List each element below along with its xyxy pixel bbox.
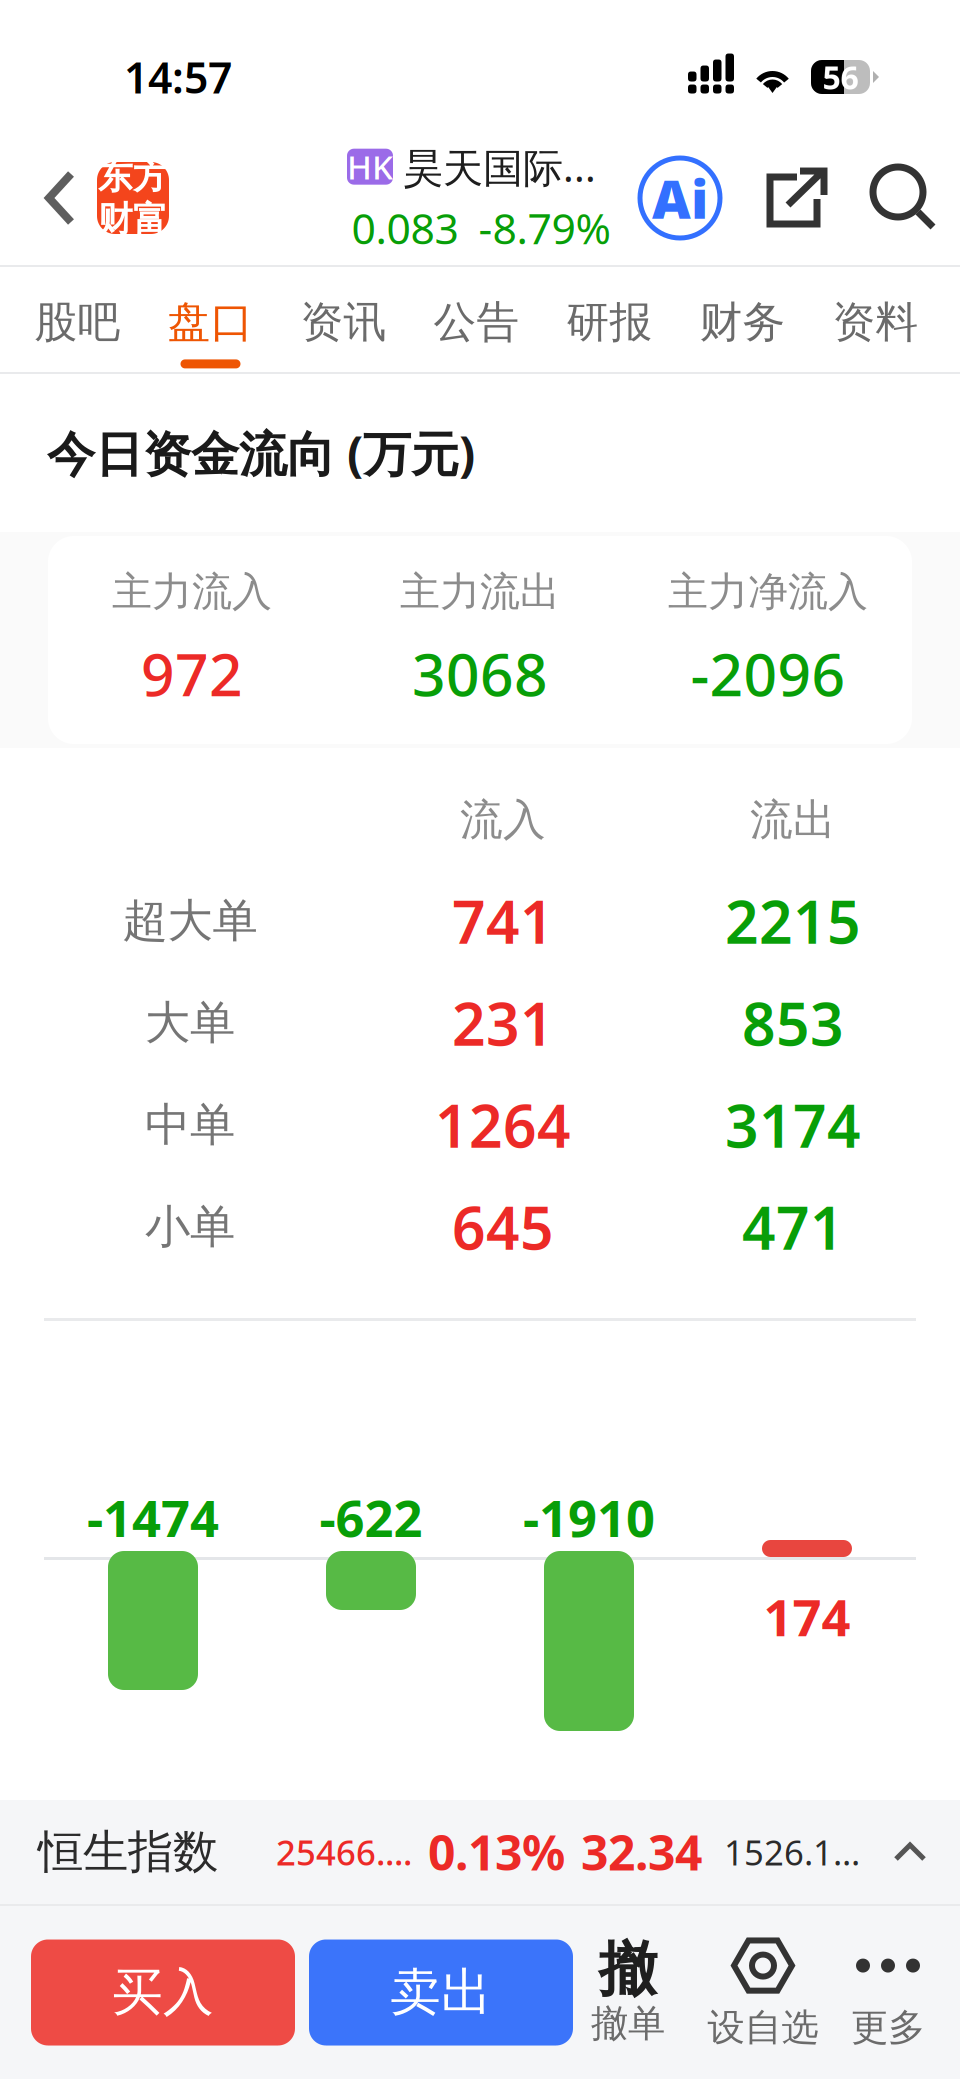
button[interactable]: 公告: [410, 267, 543, 372]
staticText: 972: [141, 635, 243, 712]
staticText: 设自选: [707, 2005, 818, 2050]
staticText: 主力净流入: [668, 567, 868, 617]
staticText: 撤: [598, 1933, 657, 2006]
staticText: 资讯: [300, 296, 386, 348]
staticText: 主力流出: [400, 567, 560, 617]
staticText: 32.34: [581, 1820, 702, 1884]
staticText: 资料: [832, 296, 918, 348]
button[interactable]: 恒生指数: [0, 1800, 960, 1904]
staticText: 231: [452, 984, 554, 1062]
staticText: 买入: [112, 1961, 214, 2024]
staticText: 超大单: [122, 893, 257, 949]
button[interactable]: 东方财富: [97, 162, 169, 234]
staticText: 25466....: [276, 1829, 412, 1875]
staticText: 财务: [699, 296, 785, 348]
staticText: 东方 财富: [98, 155, 168, 241]
button[interactable]: 财务: [676, 267, 809, 372]
staticText: 中单: [145, 1097, 235, 1153]
staticText: 盘口: [167, 296, 253, 348]
staticText: -1474: [87, 1484, 219, 1551]
staticText: 撤单: [591, 2001, 665, 2046]
staticText: 研报: [566, 296, 652, 348]
staticText: -1910: [523, 1484, 655, 1551]
staticText: 股吧: [34, 296, 120, 348]
staticText: 3068: [412, 635, 548, 712]
staticText: 853: [742, 984, 844, 1062]
staticText: 2215: [725, 882, 861, 960]
staticText: 主力流入: [112, 567, 272, 617]
staticText: 小单: [145, 1199, 235, 1255]
staticText: 公告: [433, 296, 519, 348]
button[interactable]: 买入: [31, 1939, 295, 2045]
staticText: 14:57: [124, 49, 232, 105]
staticText: 1264: [435, 1086, 571, 1164]
staticText: HK: [347, 144, 393, 189]
staticText: 恒生指数: [38, 1824, 218, 1880]
staticText: 3174: [725, 1086, 861, 1164]
staticText: 卖出: [390, 1961, 492, 2024]
button[interactable]: 撤: [573, 1939, 683, 2046]
staticText: 741: [452, 882, 554, 960]
staticText: 流出: [750, 794, 836, 846]
button[interactable]: 分享: [765, 167, 827, 229]
staticText: 0.083: [351, 199, 458, 256]
staticText: -8.79%: [478, 199, 610, 256]
button[interactable]: 更多: [843, 1935, 933, 2050]
staticText: Ai: [652, 163, 708, 233]
button[interactable]: 资讯: [277, 267, 410, 372]
staticText: 0.13%: [428, 1820, 565, 1884]
button[interactable]: 卖出: [309, 1939, 573, 2045]
button[interactable]: 资料: [809, 267, 942, 372]
staticText: 56: [822, 56, 858, 98]
button[interactable]: 盘口: [144, 267, 277, 372]
staticText: 645: [452, 1188, 554, 1266]
staticText: 更多: [851, 2005, 925, 2050]
staticText: 1526.1...: [724, 1829, 860, 1875]
staticText: 今日资金流向 (万元): [47, 421, 475, 485]
staticText: 471: [742, 1188, 844, 1266]
staticText: 流入: [460, 794, 546, 846]
button[interactable]: 搜索: [873, 167, 935, 229]
staticText: 大单: [145, 995, 235, 1051]
button[interactable]: 设自选: [703, 1935, 823, 2050]
button[interactable]: 研报: [543, 267, 676, 372]
button[interactable]: 返回: [0, 171, 97, 225]
staticText: 174: [763, 1583, 850, 1650]
button[interactable]: 股吧: [11, 267, 144, 372]
staticText: 昊天国际建投: [403, 140, 615, 193]
staticText: -622: [319, 1484, 422, 1551]
staticText: -2096: [690, 635, 845, 712]
button[interactable]: AI 助手: [637, 155, 723, 241]
